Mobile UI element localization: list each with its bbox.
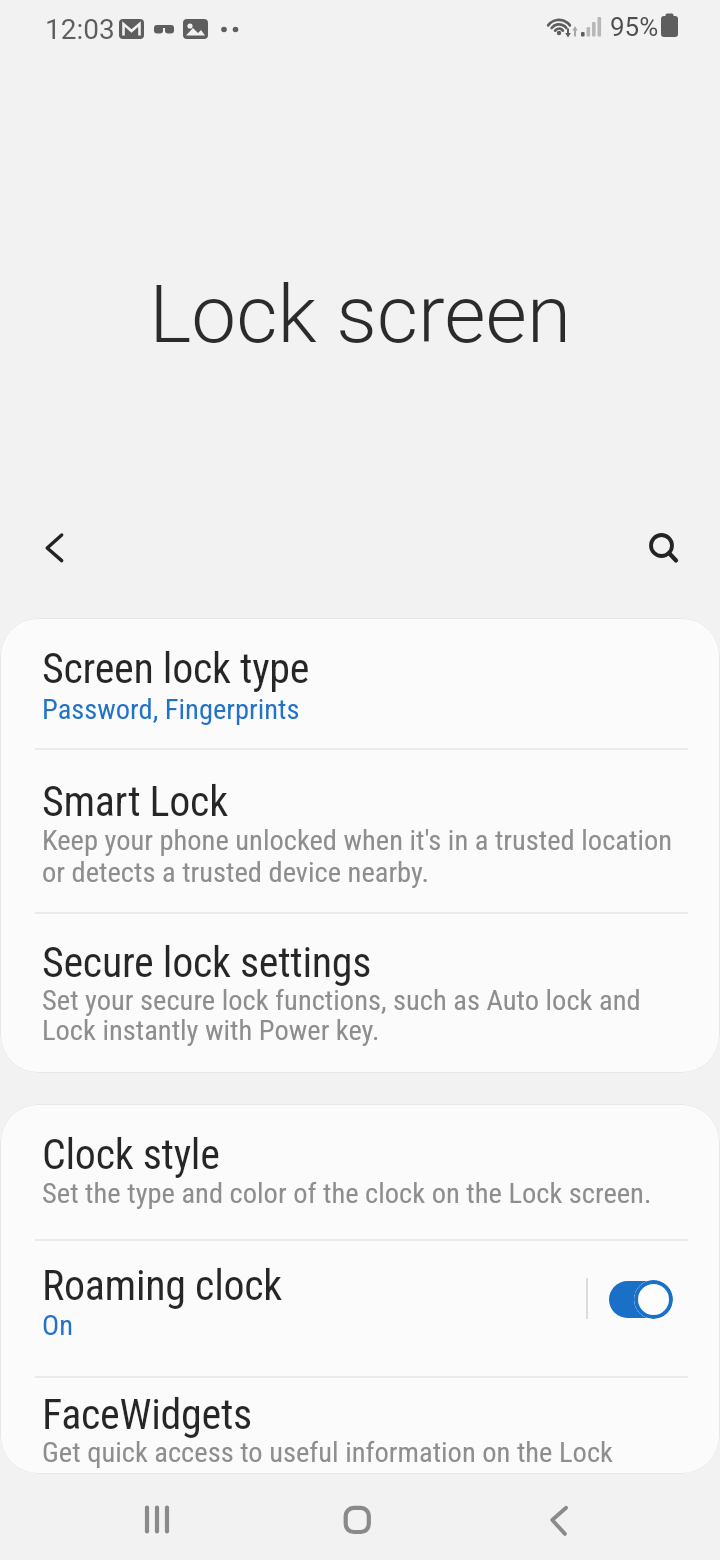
button[interactable] [640, 524, 684, 568]
button[interactable]: Smart Lock [0, 750, 720, 912]
button[interactable] [321, 1484, 393, 1556]
staticText: Keep your phone unlocked when it's in a … [42, 824, 673, 857]
staticText: Set your secure lock functions, such as … [42, 984, 641, 1017]
staticText: Secure lock settings [42, 938, 372, 987]
staticText: Smart Lock [42, 777, 228, 826]
button[interactable]: Roaming clock [0, 1241, 720, 1376]
button[interactable]: Secure lock settings [0, 914, 720, 1073]
button[interactable]: Screen lock type [0, 618, 720, 748]
staticText: Lock instantly with Power key. [42, 1014, 380, 1047]
button[interactable] [523, 1484, 595, 1556]
staticText: or detects a trusted device nearby. [42, 856, 429, 889]
staticText: Screen lock type [42, 644, 310, 693]
staticText: Lock screen [0, 268, 720, 362]
staticText: Set the type and color of the clock on t… [42, 1177, 652, 1210]
staticText: Roaming clock [42, 1261, 282, 1310]
button[interactable]: Clock style [0, 1104, 720, 1239]
button[interactable] [121, 1484, 193, 1556]
staticText: Clock style [42, 1130, 220, 1179]
staticText: On [42, 1309, 73, 1342]
staticText: FaceWidgets [42, 1390, 252, 1439]
button[interactable] [30, 528, 74, 572]
staticText: 95% [610, 12, 659, 42]
button[interactable] [609, 1281, 672, 1318]
staticText: Get quick access to useful information o… [42, 1436, 613, 1469]
staticText: Password, Fingerprints [42, 693, 300, 726]
button[interactable]: FaceWidgets [0, 1378, 720, 1474]
staticText: 12:03 [45, 13, 115, 46]
